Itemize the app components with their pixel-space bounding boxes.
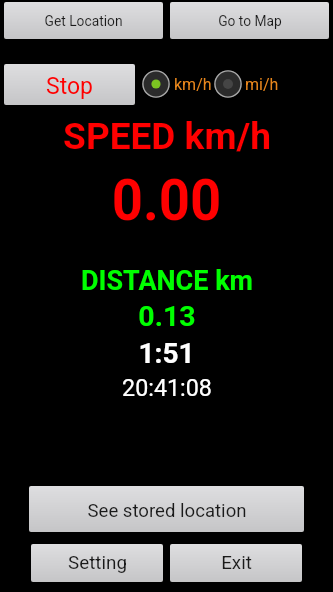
- staticText: Go to Map: [218, 13, 282, 29]
- staticText: 20:41:08: [122, 374, 212, 401]
- staticText: 0.00: [111, 166, 221, 234]
- staticText: DISTANCE km: [81, 265, 253, 297]
- button[interactable]: Get Location: [4, 2, 163, 39]
- button[interactable]: km/h unit selected: [142, 70, 212, 98]
- button[interactable]: Setting: [31, 544, 163, 582]
- staticText: Setting: [68, 552, 127, 574]
- staticText: km/h: [174, 75, 212, 94]
- other: mi/h unit: [214, 70, 242, 98]
- button[interactable]: See stored location: [29, 486, 304, 532]
- staticText: Stop: [46, 73, 93, 100]
- staticText: 1:51: [138, 337, 195, 370]
- staticText: Exit: [221, 552, 252, 574]
- staticText: Get Location: [44, 13, 123, 29]
- other: km/h unit selected: [142, 70, 170, 98]
- button[interactable]: Stop: [4, 64, 135, 105]
- button[interactable]: Go to Map: [170, 2, 329, 39]
- staticText: See stored location: [87, 500, 247, 522]
- staticText: SPEED km/h: [63, 115, 271, 158]
- button[interactable]: mi/h unit: [214, 70, 279, 98]
- button[interactable]: Exit: [170, 544, 302, 582]
- staticText: 0.13: [138, 300, 196, 333]
- staticText: mi/h: [245, 75, 279, 94]
